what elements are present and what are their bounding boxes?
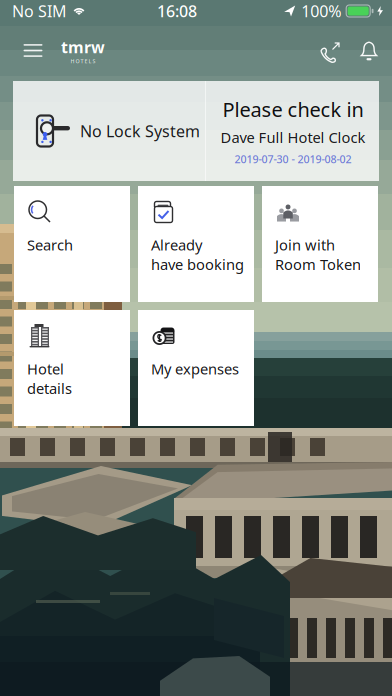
button[interactable]: Already have booking bbox=[138, 186, 254, 302]
button[interactable]: Notifications bbox=[349, 27, 389, 73]
staticText: 16:08 bbox=[157, 0, 197, 22]
button[interactable]: Call hotel bbox=[307, 27, 349, 73]
button[interactable]: Hotel details bbox=[14, 310, 130, 426]
staticText: Please check in bbox=[222, 96, 363, 122]
button[interactable]: Join with Room Token bbox=[262, 186, 378, 302]
staticText: Already have booking bbox=[151, 235, 244, 274]
staticText: No SIM bbox=[12, 0, 67, 22]
button[interactable]: My expenses bbox=[138, 310, 254, 426]
staticText: 100% bbox=[301, 0, 341, 22]
staticText: tmrw bbox=[61, 36, 105, 57]
staticText: H O T E L S bbox=[70, 58, 95, 65]
staticText: Join with Room Token bbox=[275, 235, 361, 274]
staticText: No Lock System bbox=[80, 120, 200, 142]
staticText: Search bbox=[27, 235, 73, 254]
button[interactable]: Search bbox=[14, 186, 130, 302]
staticText: Dave Full Hotel Clock bbox=[220, 127, 365, 147]
staticText: 2019-07-30 - 2019-08-02 bbox=[234, 152, 351, 166]
staticText: My expenses bbox=[151, 359, 239, 378]
button[interactable]: No Lock System bbox=[13, 81, 379, 181]
button[interactable]: Menu bbox=[9, 28, 57, 72]
staticText: Hotel details bbox=[27, 359, 72, 398]
